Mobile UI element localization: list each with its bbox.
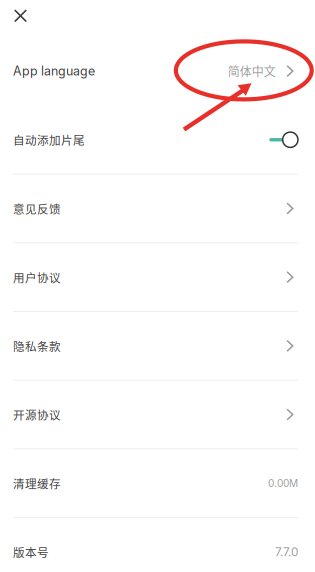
button[interactable]: 自动添加片尾 — [13, 105, 298, 174]
staticText: 开源协议 — [13, 406, 61, 423]
button[interactable]: 用户协议 — [13, 243, 298, 311]
button[interactable]: 清理缓存 — [13, 449, 298, 518]
button[interactable]: 开源协议 — [13, 380, 298, 449]
staticText: 清理缓存 — [13, 475, 61, 492]
staticText: 版本号 — [13, 544, 49, 560]
button[interactable]: 意见反馈 — [13, 174, 298, 243]
staticText: 自动添加片尾 — [13, 131, 85, 148]
button[interactable]: Close — [0, 0, 40, 33]
button[interactable]: 版本号 — [13, 518, 298, 572]
staticText: 7.7.0 — [275, 545, 298, 559]
staticText: 0.00M — [268, 477, 298, 489]
staticText: 简体中文 — [228, 62, 276, 80]
button[interactable]: 隐私条款 — [13, 311, 298, 380]
staticText: App language — [13, 63, 95, 78]
button[interactable]: App language — [13, 37, 298, 105]
staticText: 意见反馈 — [13, 200, 61, 217]
staticText: 隐私条款 — [13, 337, 61, 354]
staticText: 用户协议 — [13, 269, 61, 286]
